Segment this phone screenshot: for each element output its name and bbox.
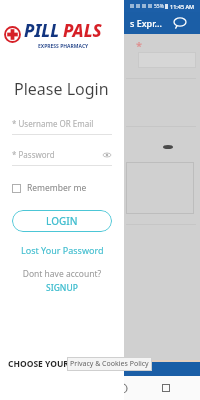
- staticText: * Username OR Email: [12, 118, 94, 129]
- staticText: Dont have account?: [0, 268, 124, 280]
- button[interactable]: Privacy & Cookies Policy: [70, 359, 149, 369]
- button[interactable]: Show password: [102, 150, 112, 160]
- staticText: Remember me: [27, 182, 87, 194]
- staticText: Please Login: [14, 78, 109, 100]
- staticText: s Expr...: [130, 17, 162, 29]
- staticText: 55%: [154, 3, 164, 10]
- button[interactable]: Lost Your Password: [0, 244, 124, 256]
- staticText: *: [136, 38, 143, 53]
- button[interactable]: Recents: [156, 378, 176, 398]
- button[interactable]: SIGNUP: [0, 282, 124, 294]
- staticText: 11:45 AM: [170, 3, 195, 10]
- staticText: EXPRESS PHARMACY: [38, 43, 89, 50]
- button[interactable]: Remember me: [12, 182, 87, 194]
- staticText: * Password: [12, 149, 55, 160]
- staticText: PALS: [63, 19, 102, 42]
- staticText: Privacy & Cookies Policy: [70, 359, 149, 369]
- button[interactable]: Home: [112, 378, 132, 398]
- button[interactable]: Chat: [172, 15, 188, 31]
- staticText: Lost Your Password: [21, 244, 104, 256]
- staticText: LOGIN: [46, 214, 78, 228]
- staticText: SIGNUP: [46, 282, 78, 294]
- button[interactable]: LOGIN: [12, 210, 112, 232]
- staticText: PILL: [24, 19, 60, 42]
- staticText: CHOOSE YOUR LANGUAGE: [8, 358, 118, 370]
